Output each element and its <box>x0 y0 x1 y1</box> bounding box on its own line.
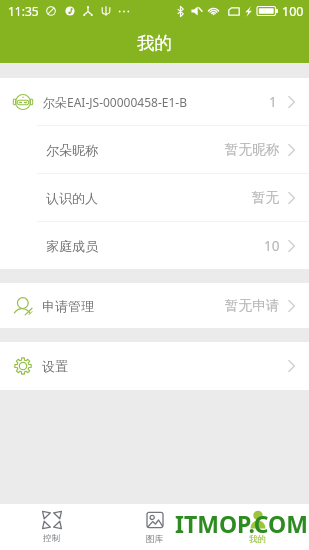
staticText: 家庭成员 <box>46 238 98 254</box>
staticText: 11:35 <box>8 3 39 19</box>
button[interactable]: 设置 <box>0 342 309 390</box>
staticText: 100 <box>282 3 304 20</box>
button[interactable]: 图库 <box>103 504 206 550</box>
button[interactable]: 认识的人 <box>0 174 309 221</box>
staticText: 暂无 <box>252 189 280 206</box>
staticText: 我的 <box>137 32 172 54</box>
staticText: 图库 <box>146 534 164 545</box>
staticText: 1 <box>269 92 277 111</box>
staticText: 暂无昵称 <box>225 141 280 158</box>
staticText: 10 <box>264 236 280 255</box>
staticText: 暂无申请 <box>225 297 280 314</box>
staticText: 控制 <box>43 533 61 544</box>
staticText: 我的 <box>249 534 267 545</box>
staticText: 尔朵昵称 <box>46 142 98 158</box>
button[interactable]: 尔朵昵称 <box>0 126 309 173</box>
button[interactable]: 家庭成员 <box>0 222 309 269</box>
button[interactable]: 尔朵EAI-JS-00000458-E1-B <box>0 78 309 125</box>
button[interactable]: 申请管理 <box>0 283 309 328</box>
staticText: 申请管理 <box>42 298 94 314</box>
staticText: ITMOP.COM <box>175 508 308 539</box>
button[interactable]: 控制 <box>0 504 103 550</box>
button[interactable]: 我的 <box>206 504 309 550</box>
staticText: 设置 <box>42 358 68 374</box>
staticText: 认识的人 <box>46 190 98 206</box>
staticText: 尔朵EAI-JS-00000458-E1-B <box>43 94 187 110</box>
